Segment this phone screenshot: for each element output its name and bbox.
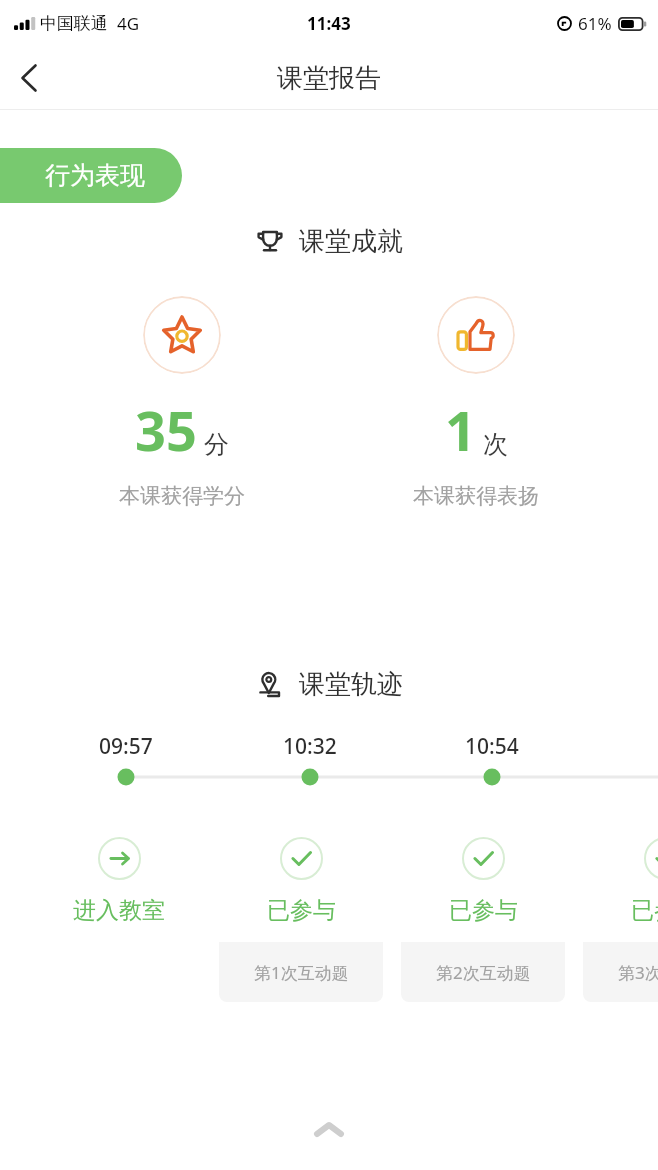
staticText: 课堂报告 [277,62,381,95]
staticText: 10:32 [283,732,337,761]
staticText: 09:57 [99,732,153,761]
staticText: 已参与 [449,896,518,925]
button[interactable]: 已参与 [219,799,383,1002]
button[interactable]: 已参与 [583,799,658,1002]
staticText: 61% [578,12,612,35]
button[interactable]: 行为表现 [0,148,182,203]
staticText: 本课获得表扬 [413,483,539,509]
staticText: 课堂轨迹 [299,668,403,701]
staticText: 分 [204,429,229,460]
button[interactable]: Collapse [301,1110,357,1148]
staticText: 已参与 [631,896,658,925]
staticText: 次 [483,429,508,460]
staticText: 10:54 [465,732,519,761]
button[interactable]: 1 [339,335,613,558]
button[interactable]: 进入教室 [37,799,201,1002]
staticText: 35 [135,393,197,467]
staticText: 本课获得学分 [119,483,245,509]
staticText: 进入教室 [73,896,165,925]
staticText: 第1次互动题 [254,961,349,984]
button[interactable]: 已参与 [401,799,565,1002]
staticText: 1 [445,393,476,467]
staticText: 4G [117,12,140,35]
staticText: 第2次互动题 [436,961,531,984]
staticText: 11:43 [307,12,351,35]
button[interactable]: Back [0,49,58,107]
staticText: 行为表现 [45,160,145,191]
staticText: 课堂成就 [299,225,403,258]
staticText: 第3次互动题 [618,961,658,984]
staticText: 中国联通 [40,13,108,34]
staticText: 已参与 [267,896,336,925]
button[interactable]: 35 [45,335,318,558]
